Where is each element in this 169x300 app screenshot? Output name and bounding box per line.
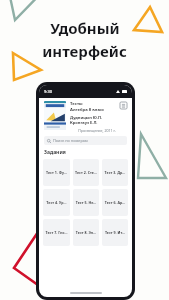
- staticText: Тест 3. Др...: [104, 170, 126, 175]
- button[interactable]: Сведения: [119, 101, 128, 110]
- staticText: Поиск по номерам: [53, 138, 88, 143]
- button[interactable]: Тест 6. Ар...: [102, 189, 128, 216]
- button[interactable]: Тест 9. Ит...: [102, 219, 128, 246]
- button[interactable]: Тест 1. Фу...: [43, 159, 70, 186]
- staticText: Задания: [44, 149, 66, 156]
- button[interactable]: Тест 5. Не...: [73, 189, 99, 216]
- button[interactable]: Тест 3. Др...: [102, 159, 128, 186]
- staticText: Дудницын Ю.П.: [70, 115, 103, 120]
- staticText: Тест 5. Не...: [75, 200, 97, 205]
- staticText: Тесты: [70, 101, 83, 107]
- button[interactable]: Поиск по номерам: [44, 136, 127, 145]
- staticText: Тест 9. Ит...: [104, 230, 126, 235]
- staticText: Тест 7. Гео...: [45, 230, 68, 235]
- staticText: Кронгауз Е.Л.: [70, 120, 98, 125]
- button[interactable]: Тест 2. Сте...: [73, 159, 99, 186]
- staticText: Просвещение, 2011 г.: [70, 128, 116, 133]
- staticText: Тест 8. Эле...: [75, 230, 97, 235]
- staticText: Тест 1. Фу...: [45, 170, 68, 175]
- button[interactable]: Тесты: [44, 101, 128, 133]
- staticText: интерфейс: [42, 41, 127, 61]
- staticText: 9:30: [44, 89, 52, 94]
- button[interactable]: Тест 8. Эле...: [73, 219, 99, 246]
- staticText: Удобный: [50, 18, 120, 38]
- button[interactable]: Тест 4. Ур...: [43, 189, 70, 216]
- staticText: Тест 4. Ур...: [45, 200, 68, 205]
- button[interactable]: Тест 7. Гео...: [43, 219, 70, 246]
- staticText: Тест 6. Ар...: [104, 200, 126, 205]
- staticText: Тест 2. Сте...: [75, 170, 97, 175]
- staticText: Алгебра 8 класс: [70, 107, 105, 113]
